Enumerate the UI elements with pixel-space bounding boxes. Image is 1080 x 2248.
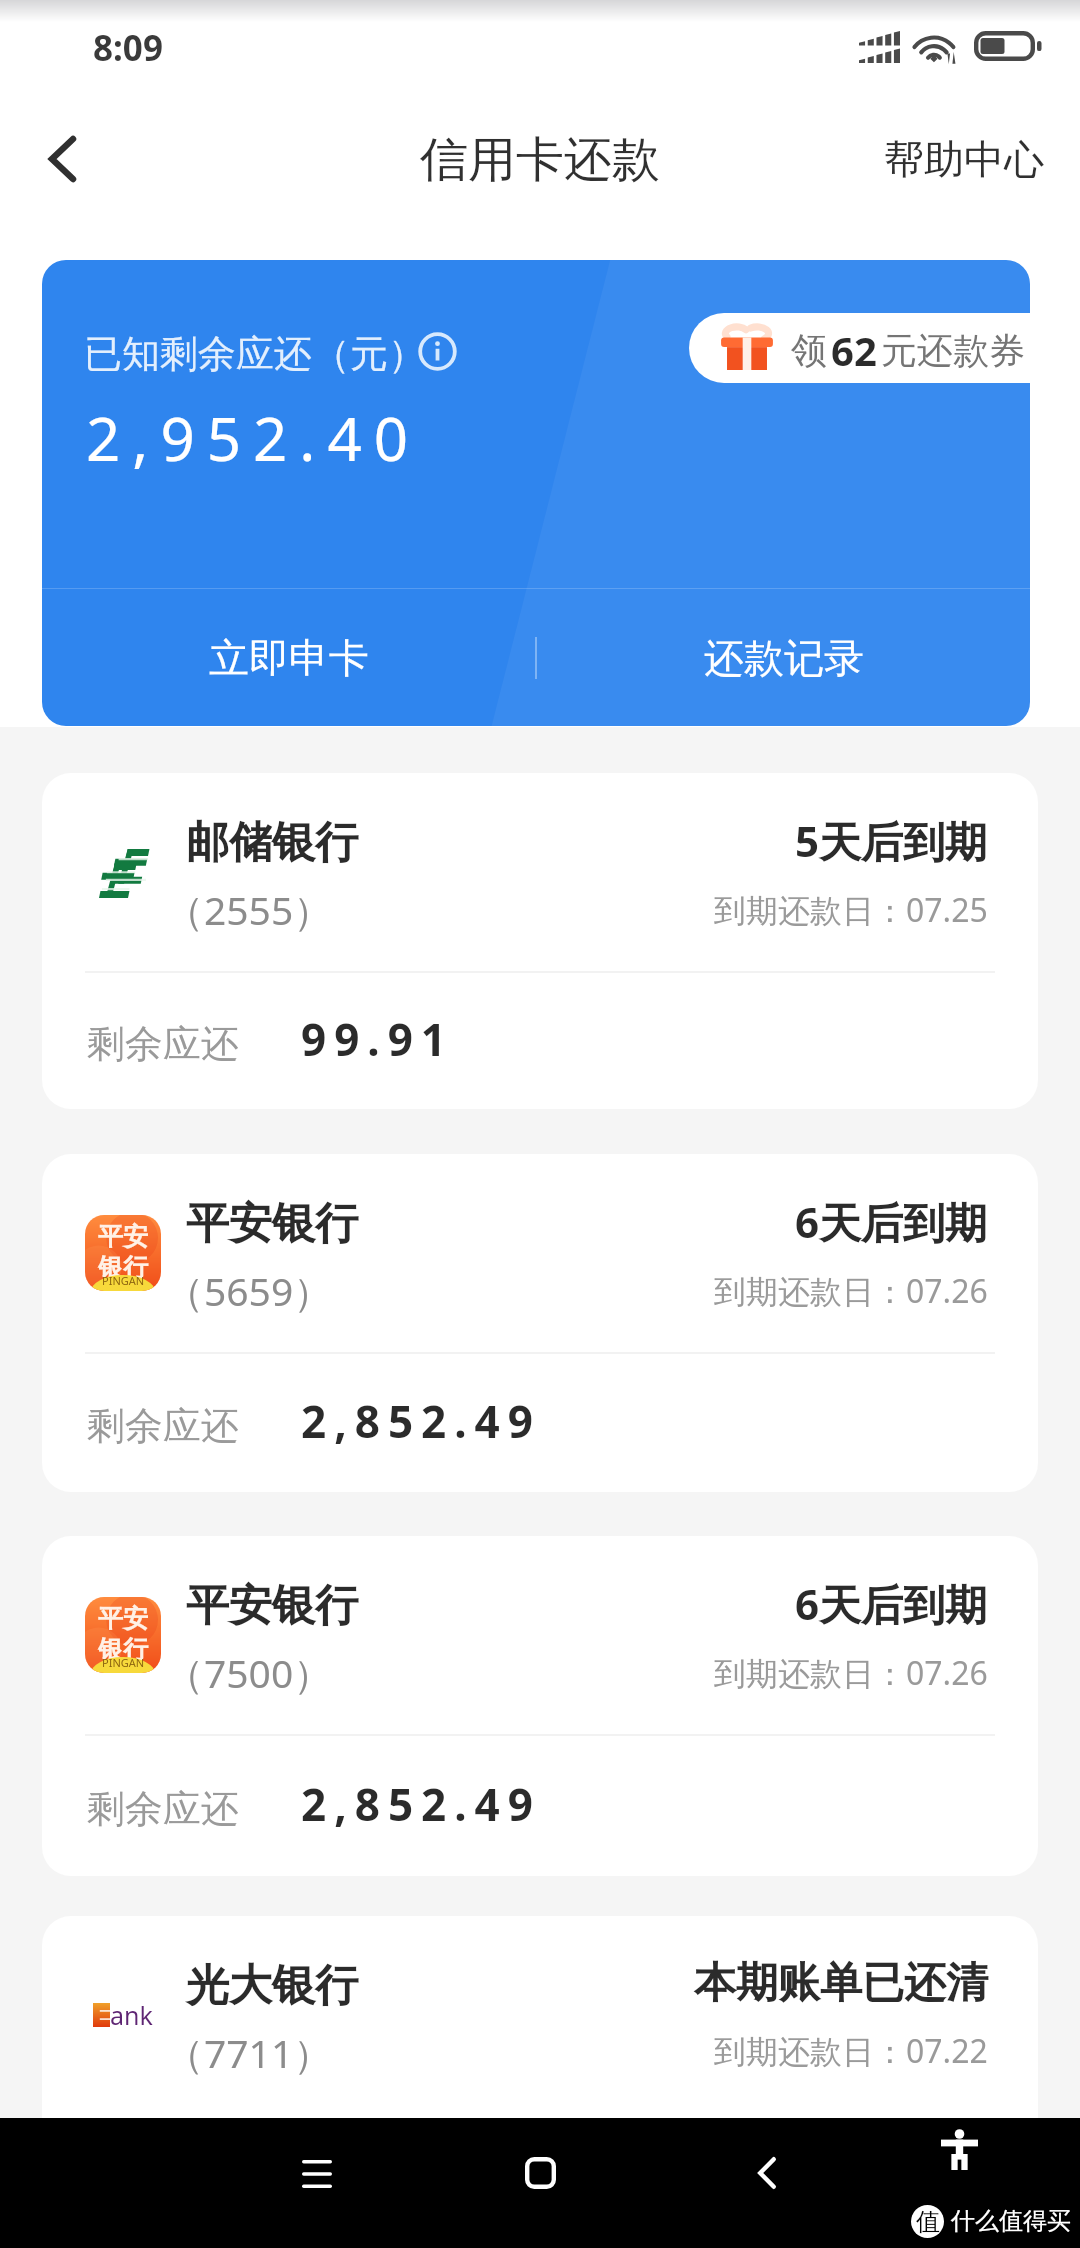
staticText: 光大银行: [186, 1959, 358, 2013]
staticText: 62: [831, 323, 877, 377]
staticText: 平安银行: [186, 1197, 358, 1251]
staticText: 信用卡还款: [420, 130, 660, 190]
staticText: 元还款券: [881, 328, 1025, 373]
staticText: 6天后到期: [795, 1193, 988, 1250]
button[interactable]: 立即申卡: [42, 589, 535, 726]
staticText: 银行: [98, 1634, 148, 1665]
staticText: 8:09: [93, 24, 163, 72]
staticText: （7711）: [165, 2026, 333, 2079]
staticText: 值: [916, 2207, 940, 2237]
staticText: 领: [791, 328, 827, 373]
staticText: （7500）: [165, 1646, 333, 1699]
button[interactable]: 还款记录: [537, 589, 1030, 726]
staticText: 到期还款日：07.22: [714, 2029, 988, 2073]
staticText: 2,952.40: [86, 397, 421, 479]
staticText: 还款记录: [704, 633, 864, 683]
staticText: 99.91: [301, 1009, 455, 1069]
staticText: 什么值得买: [951, 2206, 1071, 2236]
staticText: 立即申卡: [209, 633, 369, 683]
staticText: PINGAN: [102, 1273, 145, 1288]
button[interactable]: Recent apps: [267, 2124, 367, 2224]
button[interactable]: 帮助中心: [884, 134, 1080, 184]
staticText: 平安银行: [186, 1579, 358, 1633]
staticText: 本期账单已还清: [694, 1957, 988, 2010]
staticText: （2555）: [165, 883, 333, 936]
button[interactable]: 平安: [42, 1154, 1038, 1492]
button[interactable]: Back: [717, 2123, 817, 2223]
button[interactable]: ank: [42, 1916, 1038, 2248]
staticText: 银行: [98, 1252, 148, 1283]
button[interactable]: 领: [689, 313, 1039, 383]
staticText: 到期还款日：07.26: [714, 1651, 988, 1695]
staticText: 剩余应还: [87, 1785, 239, 1833]
staticText: 平安: [98, 1221, 148, 1252]
staticText: ank: [110, 1998, 153, 2031]
button[interactable]: 平安: [42, 1536, 1038, 1876]
button[interactable]: 邮储银行: [42, 773, 1038, 1109]
button[interactable]: Accessibility: [929, 2130, 989, 2170]
staticText: 剩余应还: [87, 1402, 239, 1450]
staticText: 到期还款日：07.26: [714, 1269, 988, 1313]
staticText: PINGAN: [102, 1655, 145, 1670]
staticText: 平安: [98, 1603, 148, 1634]
staticText: 剩余应还: [87, 1020, 239, 1068]
button[interactable]: Back: [2, 99, 122, 218]
button[interactable]: Home: [490, 2123, 590, 2223]
staticText: 已知剩余应还（元）: [84, 330, 426, 378]
staticText: 到期还款日：07.25: [714, 888, 988, 932]
staticText: 邮储银行: [186, 816, 358, 870]
staticText: （5659）: [165, 1264, 333, 1317]
staticText: 2,852.49: [301, 1391, 541, 1451]
staticText: 6天后到期: [795, 1575, 988, 1632]
staticText: 5天后到期: [795, 812, 988, 869]
staticText: 2,852.49: [301, 1774, 541, 1834]
